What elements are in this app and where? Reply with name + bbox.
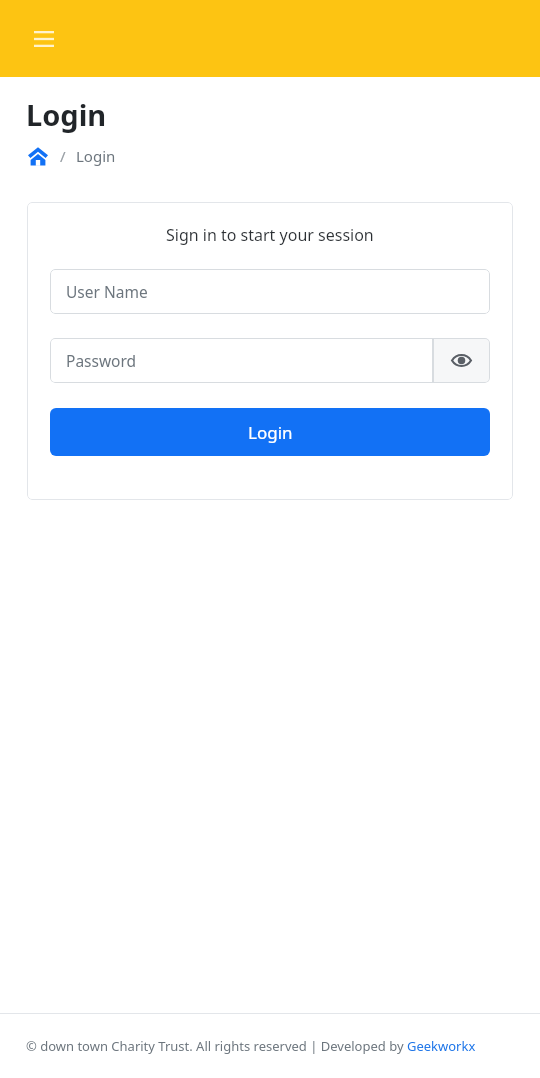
staticText: © down town Charity Trust. All rights re… [26,1037,476,1055]
staticText: Password [66,350,137,371]
staticText: Sign in to start your session [166,224,374,246]
button[interactable]: Home [26,144,50,168]
button[interactable]: Login [50,408,490,456]
staticText: Login [248,421,293,444]
button[interactable]: User Name [50,269,490,314]
button[interactable]: Show password [433,338,490,383]
staticText: User Name [66,281,148,302]
button[interactable]: Open navigation menu [24,19,64,59]
button[interactable]: Password [50,338,433,383]
staticText: Login [26,95,107,134]
staticText: Login [76,146,116,166]
staticText: / [60,146,66,166]
